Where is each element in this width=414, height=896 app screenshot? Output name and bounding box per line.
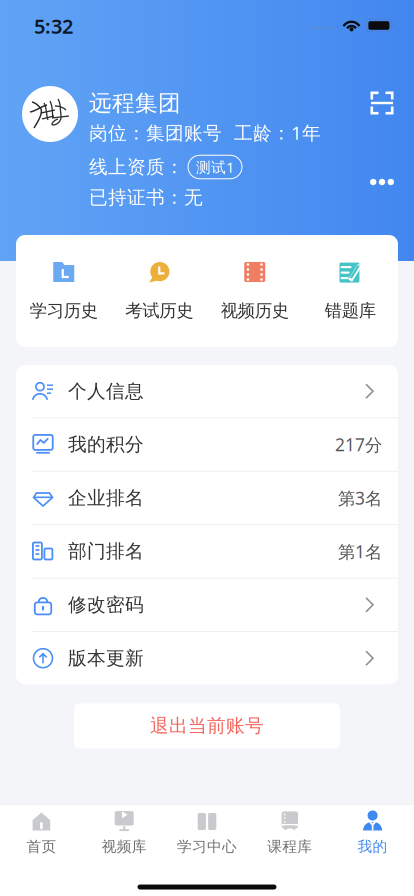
staticText: 首页 <box>26 837 56 855</box>
staticText: 课程库 <box>267 837 312 855</box>
button[interactable]: 部门排名 <box>16 525 398 578</box>
staticText: 已持证书：无 <box>89 186 203 209</box>
staticText: 视频历史 <box>221 300 289 321</box>
button[interactable]: 版本更新 <box>16 632 398 684</box>
button[interactable]: 学习历史 <box>16 235 111 347</box>
button[interactable]: 个人信息 <box>16 365 398 417</box>
staticText: 岗位：集团账号 工龄：1年 <box>89 120 321 145</box>
button[interactable]: 企业排名 <box>16 472 398 524</box>
staticText: 217分 <box>335 433 382 456</box>
staticText: 远程集团 <box>89 89 181 117</box>
staticText: 学习历史 <box>30 300 98 321</box>
button[interactable]: 课程库 <box>248 805 331 862</box>
staticText: 视频库 <box>102 837 147 855</box>
staticText: 错题库 <box>325 300 376 321</box>
button[interactable]: 修改密码 <box>16 579 398 631</box>
button[interactable]: 学习中心 <box>166 805 248 862</box>
button[interactable]: 首页 <box>0 805 83 862</box>
staticText: 学习中心 <box>177 837 237 855</box>
staticText: 5:32 <box>34 13 73 39</box>
staticText: 个人信息 <box>68 380 144 403</box>
button[interactable]: 视频库 <box>83 805 166 862</box>
button[interactable]: 退出当前账号 <box>74 703 340 748</box>
staticText: 版本更新 <box>68 647 144 670</box>
staticText: 考试历史 <box>125 300 193 321</box>
button[interactable]: 我的积分 <box>16 418 398 471</box>
button[interactable]: 错题库 <box>302 235 398 347</box>
staticText: 第3名 <box>338 486 382 509</box>
staticText: 修改密码 <box>68 593 144 616</box>
button[interactable]: 更多 <box>368 170 396 194</box>
staticText: 部门排名 <box>68 540 144 563</box>
staticText: 企业排名 <box>68 486 144 509</box>
staticText: 线上资质： <box>89 155 184 178</box>
button[interactable]: 扫一扫 <box>363 88 401 118</box>
staticText: 测试1 <box>196 157 234 177</box>
staticText: 我的 <box>358 837 388 855</box>
button[interactable]: 视频历史 <box>207 235 302 347</box>
staticText: 退出当前账号 <box>150 714 264 737</box>
button[interactable]: 考试历史 <box>111 235 207 347</box>
button[interactable]: 我的 <box>331 805 414 862</box>
staticText: 我的积分 <box>68 433 144 456</box>
staticText: 第1名 <box>338 540 382 563</box>
